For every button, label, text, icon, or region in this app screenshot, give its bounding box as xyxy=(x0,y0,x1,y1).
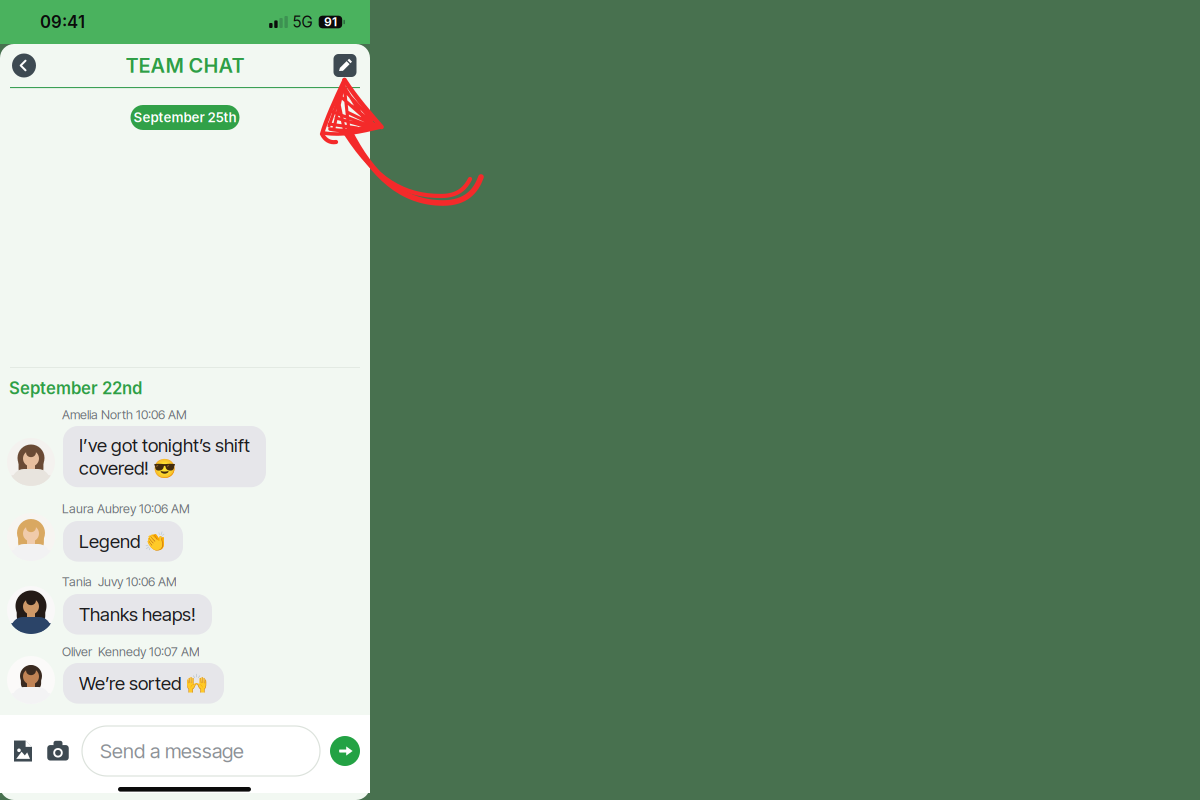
staticText: Amelia North 10:06 AM xyxy=(62,407,187,422)
button[interactable]: Send a message xyxy=(82,726,320,776)
staticText: September 25th xyxy=(133,109,236,125)
staticText: I’ve got tonight’s shift covered! 😎 xyxy=(79,434,250,479)
staticText: Tania Juvy 10:06 AM xyxy=(62,574,177,589)
staticText: Legend 👏 xyxy=(79,530,167,553)
staticText: Thanks heaps! xyxy=(79,603,196,626)
staticText: 09:41 xyxy=(40,12,85,32)
staticText: September 22nd xyxy=(9,378,142,398)
button[interactable]: Camera xyxy=(46,737,70,765)
staticText: Oliver Kennedy 10:07 AM xyxy=(62,644,200,659)
staticText: 5G xyxy=(293,13,313,31)
staticText: TEAM CHAT xyxy=(125,53,244,78)
button[interactable]: Compose xyxy=(331,51,359,79)
button[interactable]: Back xyxy=(10,51,38,79)
staticText: Laura Aubrey 10:06 AM xyxy=(62,501,190,516)
staticText: Send a message xyxy=(100,739,244,763)
staticText: 91 xyxy=(324,15,337,29)
button[interactable]: Attach photo xyxy=(11,737,35,765)
staticText: We’re sorted 🙌 xyxy=(79,672,208,695)
button[interactable]: Send xyxy=(330,736,360,766)
